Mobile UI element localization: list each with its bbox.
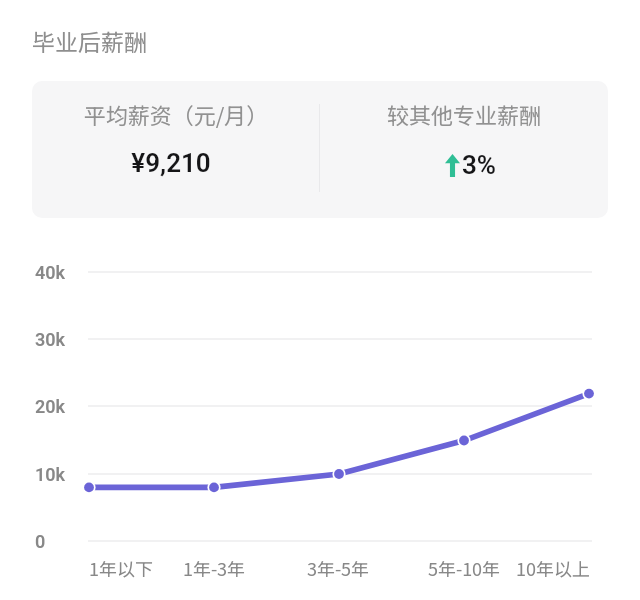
staticText: 3年-5年	[268, 555, 408, 581]
staticText: 30k	[35, 329, 66, 350]
staticText: 较其他专业薪酬	[320, 98, 608, 130]
staticText: 平均薪资（元/月）	[32, 98, 320, 130]
staticText: 毕业后薪酬	[32, 24, 147, 57]
staticText: 10年以上	[483, 555, 623, 581]
other: Increase	[445, 154, 460, 177]
other: 毕业后薪酬走势图	[0, 0, 640, 600]
staticText: 3%	[462, 150, 497, 180]
staticText: 40k	[35, 262, 66, 283]
staticText: ¥9,210	[32, 148, 315, 178]
staticText: 1年以下	[51, 555, 191, 581]
staticText: 20k	[35, 396, 66, 417]
staticText: 10k	[35, 464, 66, 485]
staticText: 5年-10年	[394, 555, 534, 581]
staticText: 1年-3年	[144, 555, 284, 581]
button[interactable]: 平均薪资（元/月）	[32, 81, 608, 218]
staticText: 0	[35, 531, 46, 552]
